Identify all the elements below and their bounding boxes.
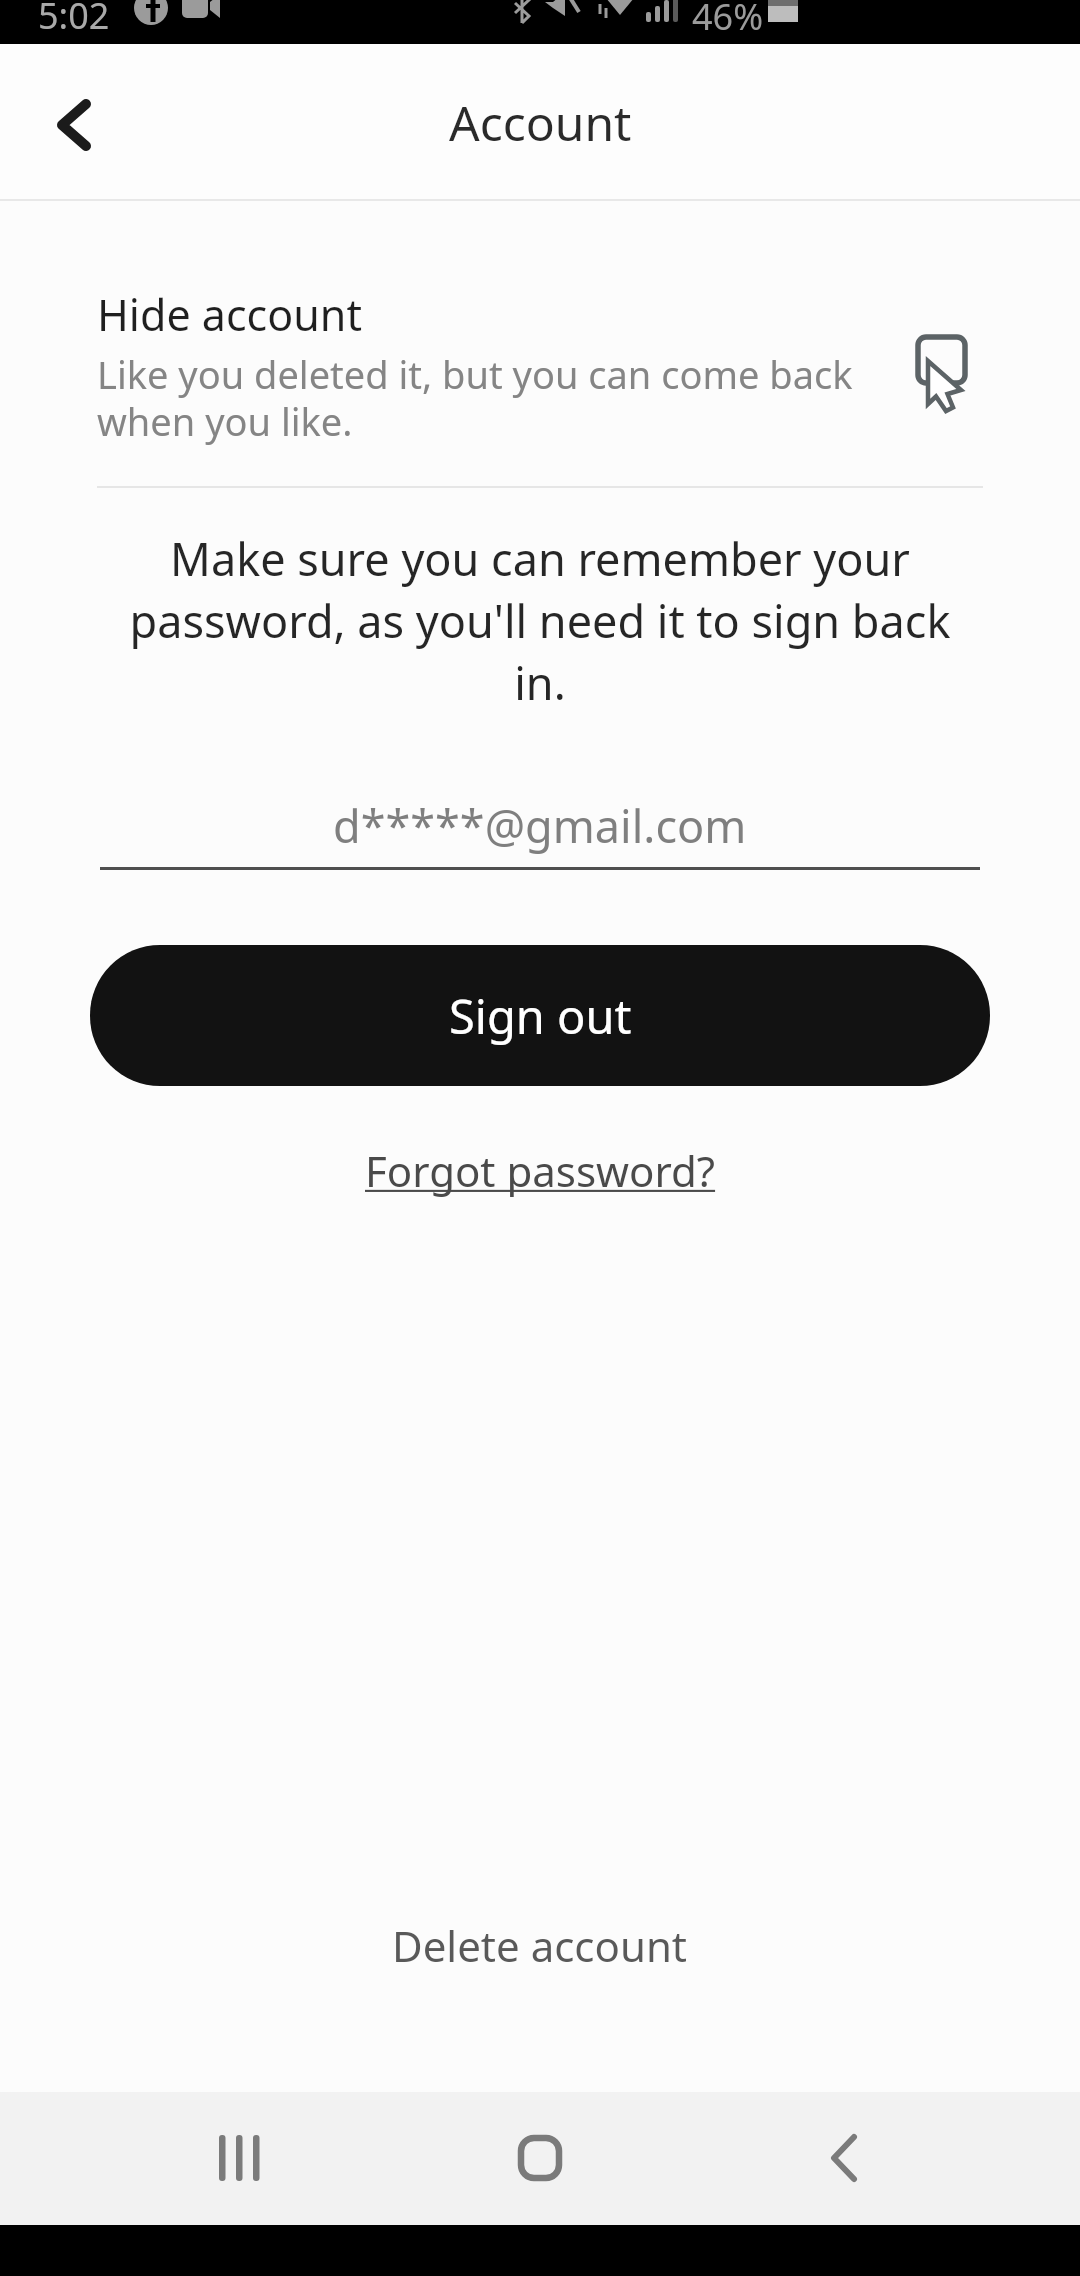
- staticText: Sign out: [449, 984, 632, 1048]
- staticText: Account: [449, 90, 632, 155]
- staticText: Hide account: [97, 285, 362, 344]
- staticText: 46%: [692, 0, 764, 36]
- staticText: Like you deleted it, but you can come ba…: [97, 348, 853, 447]
- button[interactable]: [783, 2098, 903, 2218]
- button[interactable]: d*****@gmail.com: [100, 770, 980, 870]
- button[interactable]: Forgot password?: [365, 1142, 716, 1199]
- button[interactable]: Sign out: [90, 945, 990, 1086]
- staticText: 5:02: [38, 0, 110, 35]
- staticText: Make sure you can remember your password…: [0, 528, 1080, 713]
- button[interactable]: Delete account: [392, 1917, 688, 1974]
- button[interactable]: [179, 2098, 299, 2218]
- button[interactable]: Hide account: [0, 260, 1080, 460]
- button[interactable]: [480, 2098, 600, 2218]
- button[interactable]: [28, 80, 118, 170]
- staticText: d*****@gmail.com: [333, 795, 747, 856]
